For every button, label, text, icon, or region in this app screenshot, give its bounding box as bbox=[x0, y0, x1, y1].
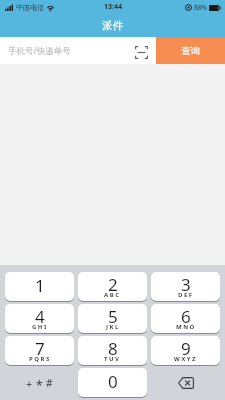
button[interactable]: 9 bbox=[151, 336, 220, 366]
staticText: JKL bbox=[106, 323, 120, 331]
staticText: 7 bbox=[35, 337, 45, 360]
staticText: PQRS bbox=[29, 355, 51, 363]
button[interactable]: + bbox=[5, 368, 74, 398]
staticText: ABC bbox=[104, 291, 121, 299]
button[interactable]: 查询 bbox=[156, 37, 225, 64]
staticText: WXYZ bbox=[174, 355, 198, 363]
button[interactable]: 5 bbox=[78, 304, 147, 334]
staticText: TUV bbox=[104, 355, 121, 363]
staticText: 手机号/快递单号 bbox=[8, 45, 71, 57]
staticText: 查询 bbox=[181, 45, 200, 57]
staticText: 88% bbox=[194, 3, 207, 12]
staticText: 8 bbox=[108, 337, 118, 360]
staticText: 6 bbox=[181, 305, 191, 328]
button[interactable]: 7 bbox=[5, 336, 74, 366]
button[interactable]: 4 bbox=[5, 304, 74, 334]
staticText: DEF bbox=[178, 291, 194, 299]
staticText: 中国电信 bbox=[16, 3, 44, 12]
staticText: GHI bbox=[32, 323, 48, 331]
staticText: 3 bbox=[181, 273, 191, 296]
staticText: 5 bbox=[108, 305, 118, 328]
button[interactable]: 0 bbox=[78, 368, 147, 398]
staticText: 4 bbox=[35, 305, 45, 328]
button[interactable]: 2 bbox=[78, 272, 147, 302]
button[interactable]: 6 bbox=[151, 304, 220, 334]
button[interactable]: 3 bbox=[151, 272, 220, 302]
staticText: 派件 bbox=[102, 19, 123, 32]
button[interactable]: 8 bbox=[78, 336, 147, 366]
staticText: 1 bbox=[35, 274, 45, 297]
staticText: 2 bbox=[108, 273, 118, 296]
staticText: 9 bbox=[181, 337, 191, 360]
button[interactable]: 1 bbox=[5, 272, 74, 302]
staticText: 0 bbox=[108, 370, 118, 393]
staticText: # bbox=[46, 376, 53, 390]
button[interactable]: 手机号/快递单号 bbox=[0, 37, 156, 64]
staticText: + bbox=[26, 376, 33, 391]
staticText: * bbox=[36, 377, 43, 393]
staticText: 13:44 bbox=[104, 2, 122, 12]
button[interactable] bbox=[151, 368, 220, 398]
staticText: MNO bbox=[176, 323, 196, 331]
